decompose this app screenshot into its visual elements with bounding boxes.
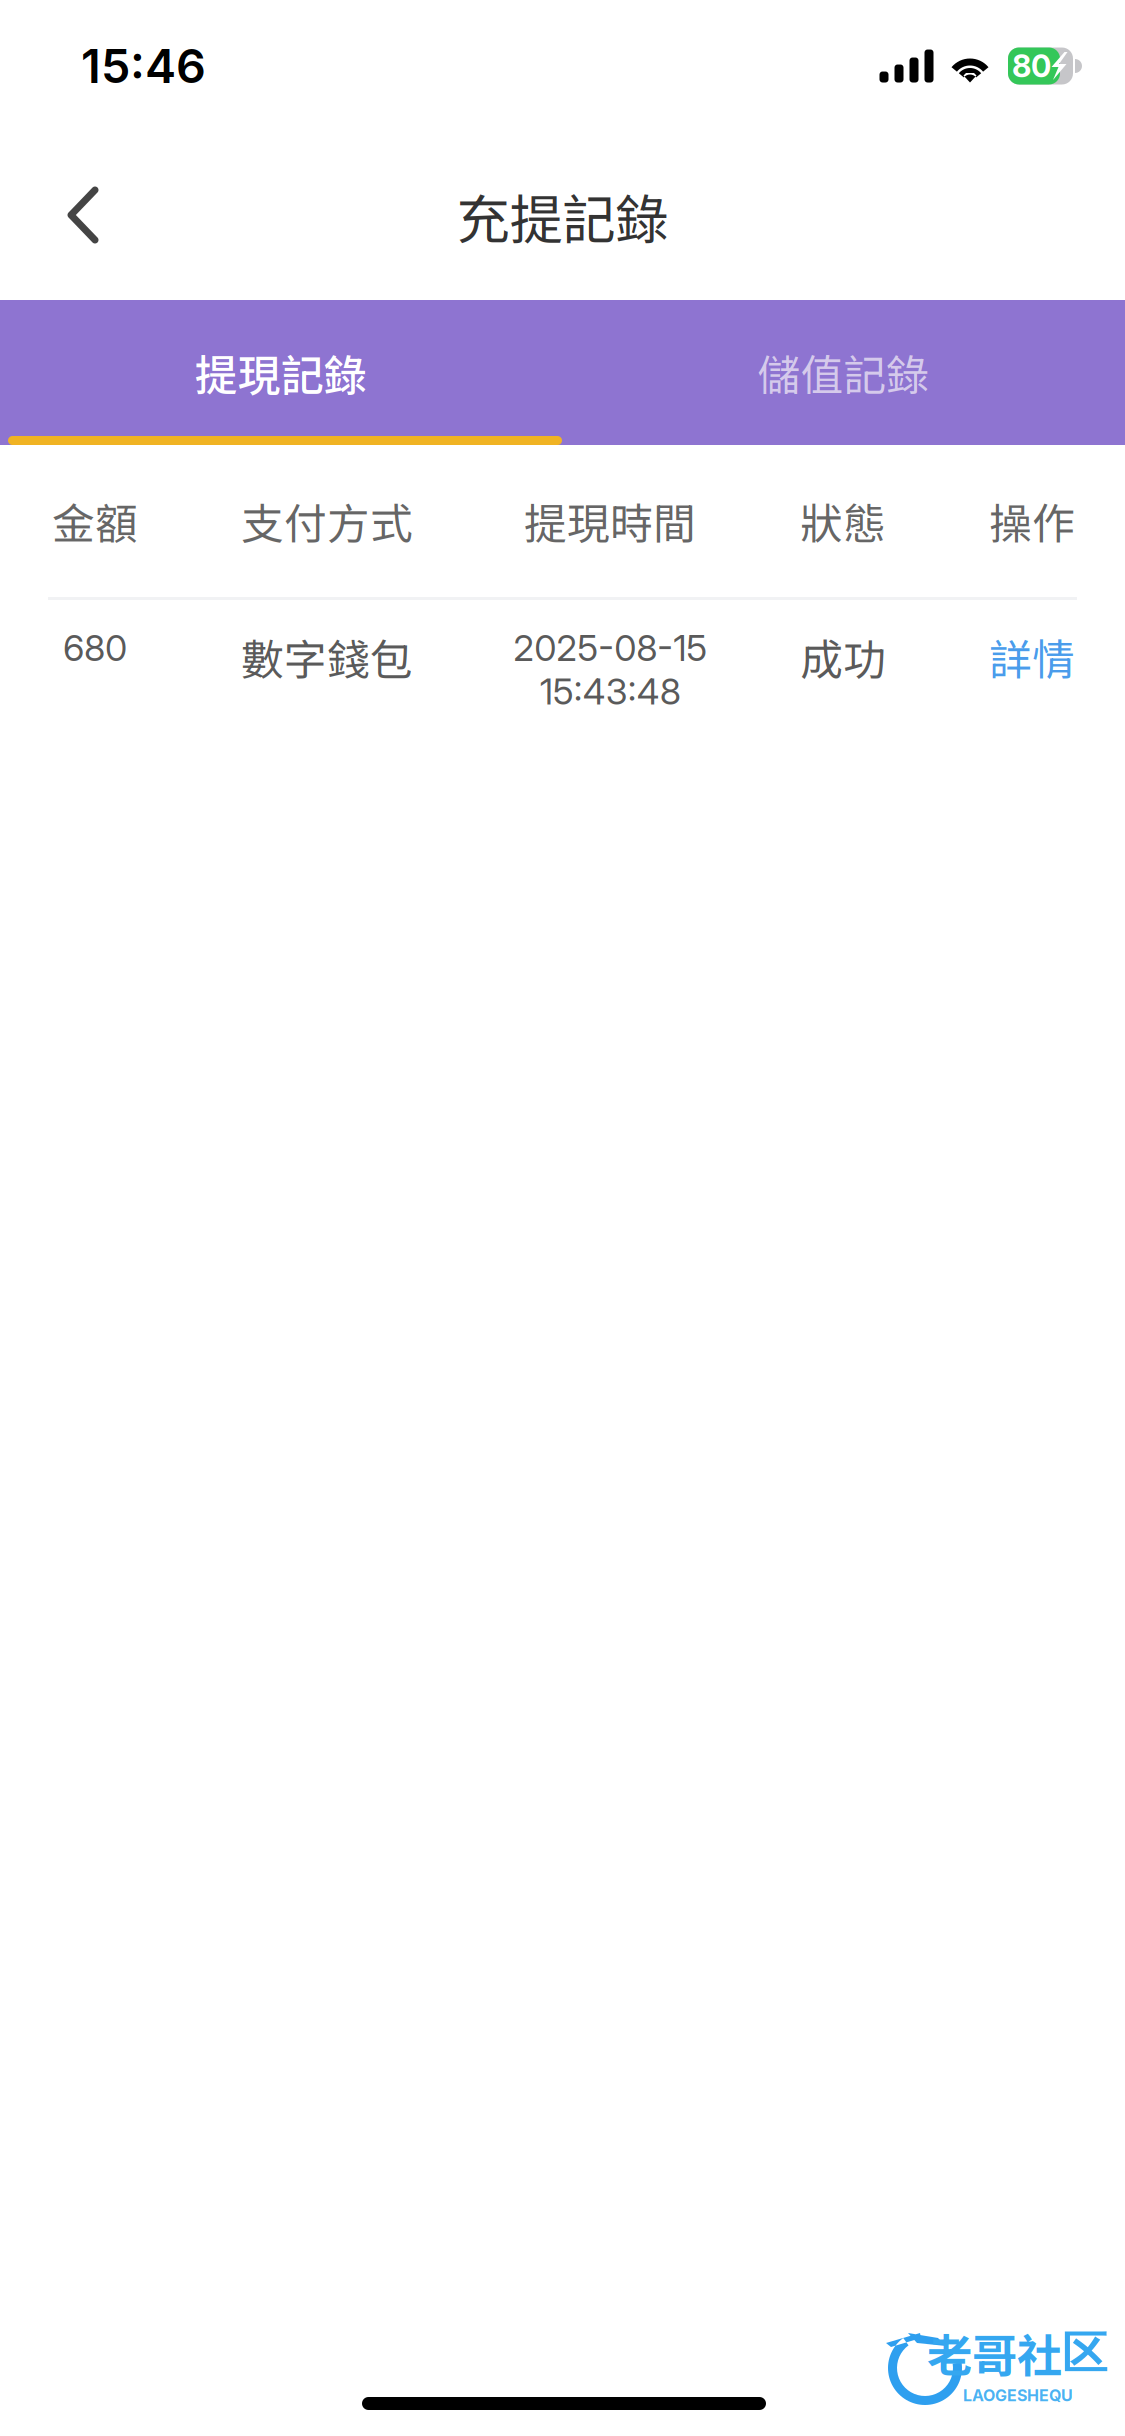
button[interactable]: Back	[18, 151, 148, 281]
staticText: LAOGESHEQU	[963, 2386, 1073, 2405]
staticText: 支付方式	[241, 490, 413, 552]
button[interactable]: 詳情	[939, 626, 1125, 688]
button[interactable]: 提現記錄	[0, 300, 562, 445]
staticText: 680	[63, 626, 127, 670]
staticText: 成功	[800, 626, 886, 688]
staticText: 數字錢包	[241, 626, 413, 688]
staticText: 充提記錄	[456, 177, 668, 255]
staticText: 提現時間	[524, 490, 696, 552]
staticText: 操作	[989, 490, 1075, 552]
staticText: 15:46	[81, 38, 206, 94]
staticText: 老哥社区	[927, 2320, 1107, 2386]
staticText: 提現記錄	[195, 342, 367, 403]
staticText: 詳情	[989, 626, 1075, 688]
staticText: 80	[1012, 47, 1051, 84]
staticText: 金額	[52, 490, 138, 552]
staticText: 狀態	[800, 490, 886, 552]
staticText: 儲值記錄	[757, 342, 929, 403]
button[interactable]: 儲值記錄	[562, 300, 1125, 445]
staticText: 2025-08-15 15:43:48	[513, 626, 707, 713]
